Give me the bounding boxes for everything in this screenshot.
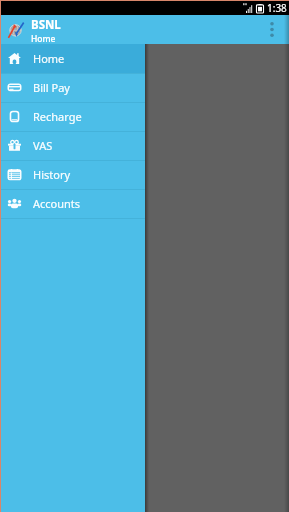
staticText: Accounts	[33, 196, 81, 211]
button[interactable]: More options	[255, 15, 289, 44]
staticText: History	[33, 167, 71, 182]
staticText: VAS	[33, 138, 53, 153]
staticText: BSNL	[31, 17, 61, 33]
button[interactable]: History	[0, 160, 145, 189]
staticText: Bill Pay	[33, 80, 70, 95]
button[interactable]: Close navigation drawer	[145, 44, 289, 512]
button[interactable]: VAS	[0, 131, 145, 160]
button[interactable]: Recharge	[0, 102, 145, 131]
button[interactable]: Bill Pay	[0, 73, 145, 102]
staticText: Recharge	[33, 109, 82, 124]
button[interactable]: Accounts	[0, 189, 145, 218]
button[interactable]: Home	[0, 44, 145, 73]
staticText: 1:38	[267, 1, 287, 15]
staticText: Home	[33, 51, 65, 66]
staticText: Home	[31, 33, 56, 44]
